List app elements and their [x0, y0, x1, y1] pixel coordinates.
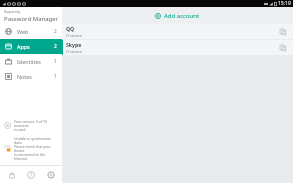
button[interactable]: Apps	[0, 39, 62, 54]
staticText: ?	[30, 172, 33, 179]
staticText: 15:19	[278, 0, 291, 7]
staticText: Kaspersky	[4, 9, 21, 14]
staticText: 2	[54, 43, 57, 50]
button[interactable]: Web	[0, 24, 62, 39]
button[interactable]: Identities	[0, 54, 62, 69]
staticText: Apps	[17, 43, 30, 50]
staticText: service	[70, 33, 82, 38]
staticText: Web	[17, 28, 29, 35]
button[interactable]: Copy password	[276, 41, 290, 55]
staticText: Unable to synchronize data. Please check…	[14, 136, 58, 161]
button[interactable]: Copy password	[276, 25, 290, 39]
button[interactable]: Help	[23, 167, 39, 183]
button[interactable]: Add account	[151, 10, 204, 22]
button[interactable]: Lock	[4, 167, 20, 183]
staticText: Free version: 6 of 15 accounts is used	[14, 119, 58, 132]
staticText: Skype	[66, 41, 82, 48]
staticText: QQ	[66, 25, 75, 32]
button[interactable]: QQ	[62, 24, 293, 39]
button[interactable]: Notes	[0, 69, 62, 84]
button[interactable]: Skype	[62, 40, 293, 55]
staticText: Add account	[164, 12, 200, 20]
staticText: Password Manager	[4, 15, 59, 23]
staticText: Identities	[17, 58, 41, 65]
staticText: 1	[54, 58, 57, 65]
staticText: service	[70, 49, 82, 54]
button[interactable]: Settings	[43, 167, 59, 183]
staticText: 1	[54, 73, 57, 80]
staticText: 2	[54, 28, 57, 35]
staticText: Notes	[17, 73, 32, 80]
